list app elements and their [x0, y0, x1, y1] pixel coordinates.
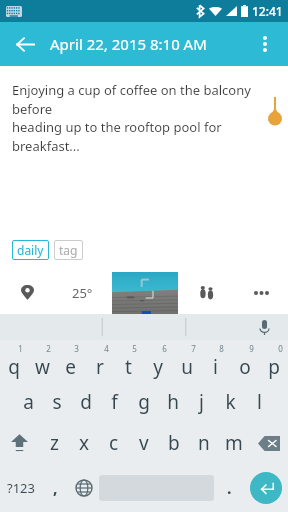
staticText: m — [225, 430, 243, 456]
button[interactable]: b — [159, 422, 189, 464]
button[interactable]: ?123 — [0, 464, 42, 512]
staticText: a — [23, 389, 34, 415]
button[interactable]: tag — [54, 240, 83, 260]
staticText: u — [181, 354, 193, 380]
button[interactable]: . — [214, 464, 244, 512]
staticText: o — [239, 354, 251, 380]
staticText: 5 — [132, 343, 137, 354]
staticText: 2 — [46, 343, 51, 354]
staticText: 7 — [191, 343, 196, 354]
staticText: b — [168, 430, 180, 456]
staticText: p — [268, 354, 280, 380]
button[interactable]: 1 — [0, 340, 28, 382]
staticText: t — [125, 354, 132, 380]
staticText: daily — [17, 242, 44, 258]
staticText: e — [65, 354, 76, 380]
button[interactable]: j — [187, 382, 216, 422]
staticText: z — [50, 430, 59, 456]
staticText: w — [35, 354, 50, 380]
staticText: Enjoying a cup of coffee on the balcony … — [12, 81, 278, 118]
button[interactable]: 4 — [85, 340, 114, 382]
staticText: s — [52, 389, 62, 415]
staticText: r — [96, 354, 104, 380]
staticText: x — [79, 430, 90, 456]
button[interactable]: Photo attachment — [109, 272, 180, 314]
staticText: 25° — [72, 284, 93, 302]
button[interactable]: 7 — [172, 340, 201, 382]
staticText: 1 — [18, 343, 23, 354]
button[interactable]: Backspace — [249, 422, 288, 464]
button[interactable]: c — [99, 422, 129, 464]
staticText: i — [213, 354, 218, 380]
staticText: 8 — [219, 343, 224, 354]
button[interactable]: g — [129, 382, 158, 422]
staticText: 0 — [278, 343, 283, 354]
staticText: n — [198, 430, 210, 456]
button[interactable]: s — [42, 382, 71, 422]
button[interactable]: 0 — [259, 340, 288, 382]
button[interactable]: m — [219, 422, 249, 464]
staticText: 9 — [249, 343, 254, 354]
button[interactable]: f — [100, 382, 129, 422]
button[interactable]: Enter — [244, 464, 288, 512]
button[interactable]: 9 — [230, 340, 259, 382]
button[interactable]: 2 — [28, 340, 56, 382]
button[interactable]: n — [189, 422, 219, 464]
staticText: . — [227, 477, 232, 499]
staticText: heading up to the rooftop pool for break… — [12, 118, 278, 155]
staticText: l — [257, 389, 262, 415]
button[interactable]: 8 — [201, 340, 230, 382]
staticText: k — [225, 389, 236, 415]
button[interactable]: v — [129, 422, 159, 464]
staticText: April 22, 2015 8:10 AM — [50, 34, 207, 54]
button[interactable]: Back — [8, 27, 42, 61]
staticText: v — [139, 430, 149, 456]
button[interactable]: 6 — [143, 340, 172, 382]
staticText: ?123 — [7, 479, 35, 497]
button[interactable]: 5 — [114, 340, 143, 382]
staticText: d — [80, 389, 92, 415]
button[interactable]: Voice input — [252, 315, 276, 339]
button[interactable]: l — [245, 382, 274, 422]
staticText: f — [111, 389, 118, 415]
button[interactable]: 3 — [56, 340, 85, 382]
staticText: 3 — [74, 343, 79, 354]
button[interactable]: 25° — [55, 272, 109, 314]
button[interactable]: a — [14, 382, 42, 422]
staticText: y — [153, 354, 163, 380]
button[interactable]: daily — [12, 240, 49, 260]
staticText: j — [199, 389, 204, 415]
button[interactable]: Location — [0, 272, 55, 314]
button[interactable]: More options — [248, 27, 282, 61]
staticText: 6 — [162, 343, 167, 354]
button[interactable]: Shift — [0, 422, 39, 464]
button[interactable]: More — [234, 272, 288, 314]
staticText: g — [138, 389, 150, 415]
staticText: h — [167, 389, 179, 415]
button[interactable]: , — [42, 464, 69, 512]
button[interactable]: d — [71, 382, 100, 422]
button[interactable]: Steps — [180, 272, 234, 314]
staticText: , — [53, 477, 58, 499]
button[interactable]: x — [69, 422, 99, 464]
staticText: 4 — [104, 343, 109, 354]
button[interactable]: h — [158, 382, 187, 422]
staticText: c — [109, 430, 119, 456]
staticText: tag — [59, 242, 78, 258]
button[interactable]: Change language — [69, 464, 99, 512]
staticText: q — [8, 354, 20, 380]
staticText: 12:41 — [252, 3, 283, 19]
button[interactable]: z — [39, 422, 69, 464]
button[interactable]: k — [216, 382, 245, 422]
